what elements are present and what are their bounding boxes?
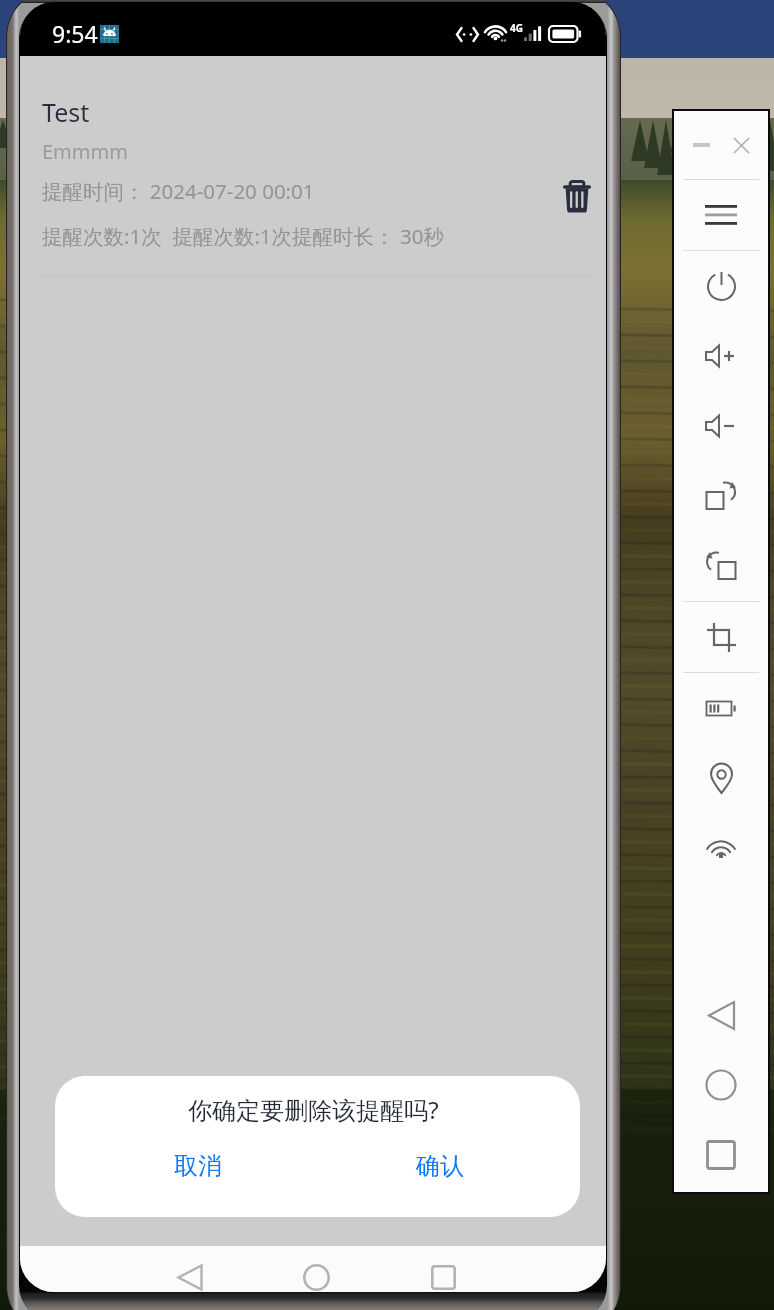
button[interactable]: 确认 — [317, 1143, 580, 1189]
button[interactable]: 取消 — [55, 1143, 317, 1189]
button[interactable]: Minimize — [688, 132, 714, 158]
button[interactable]: Recents — [415, 1254, 471, 1292]
staticText: 取消 — [174, 1151, 222, 1181]
button[interactable]: Rotate left — [674, 531, 768, 601]
staticText: 4G — [510, 21, 523, 35]
button[interactable]: Test — [20, 56, 606, 284]
button[interactable]: Wifi — [674, 813, 768, 883]
button[interactable]: Recents — [674, 1120, 768, 1190]
button[interactable]: Back — [162, 1254, 218, 1292]
button[interactable]: Menu — [674, 180, 768, 250]
staticText: 提醒时间： 2024-07-20 00:01 — [42, 177, 315, 205]
staticText: 你确定要删除该提醒吗? — [55, 1093, 576, 1126]
button[interactable]: Home — [288, 1254, 344, 1292]
staticText: Test — [42, 95, 90, 129]
button[interactable]: Location — [674, 743, 768, 813]
button[interactable]: Screenshot — [674, 602, 768, 672]
button[interactable]: Back — [674, 980, 768, 1050]
button[interactable]: Battery — [674, 673, 768, 743]
staticText: 确认 — [416, 1151, 464, 1181]
button[interactable]: Power — [674, 251, 768, 321]
staticText: 9:54 — [52, 18, 98, 49]
staticText: Emmmm — [42, 138, 128, 165]
staticText: 提醒次数:1次 提醒次数:1次提醒时长： 30秒 — [42, 222, 444, 250]
button[interactable]: Volume down — [674, 391, 768, 461]
button[interactable]: Close — [728, 132, 754, 158]
button[interactable]: Volume up — [674, 321, 768, 391]
button[interactable]: Home — [674, 1050, 768, 1120]
button[interactable]: Rotate right — [674, 461, 768, 531]
button[interactable]: Delete — [553, 173, 601, 221]
